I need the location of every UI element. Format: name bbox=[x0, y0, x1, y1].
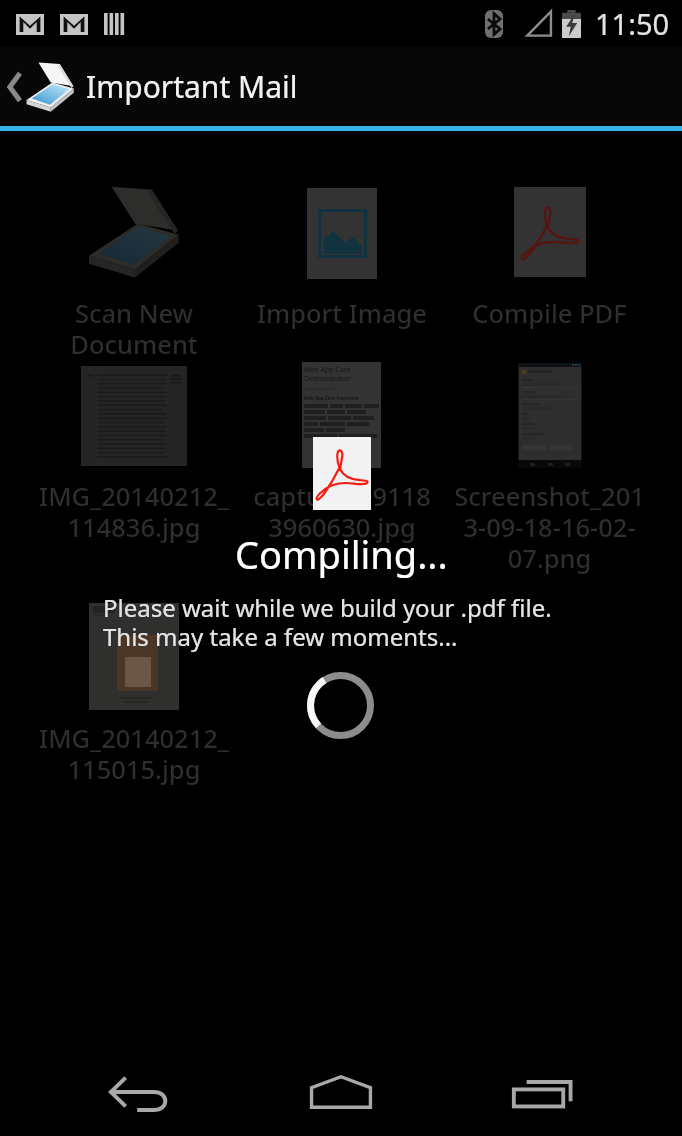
staticText: Web App Core Functions bbox=[304, 395, 359, 401]
button[interactable]: IMG_20140212_ 114836.jpg bbox=[30, 366, 237, 545]
button[interactable]: Scan New Document bbox=[30, 186, 237, 362]
staticText: IMG_20140212_ 115015.jpg bbox=[39, 721, 229, 787]
button[interactable]: Compile PDF bbox=[446, 187, 653, 331]
button[interactable]: Web App Core Demonstrator bbox=[238, 362, 445, 545]
button[interactable]: Back bbox=[81, 1048, 201, 1136]
staticText: Compile PDF bbox=[472, 296, 627, 331]
staticText: capture_19118 3960630.jpg bbox=[253, 479, 431, 545]
button[interactable]: Navigate up bbox=[0, 47, 76, 126]
button[interactable]: Recent apps bbox=[482, 1048, 602, 1136]
staticText: Scan New Document bbox=[70, 296, 198, 362]
button[interactable]: Home bbox=[281, 1048, 401, 1136]
staticText: Compiling... bbox=[235, 528, 448, 580]
button[interactable]: Import Image bbox=[238, 188, 445, 331]
staticText: 11:50 bbox=[595, 4, 670, 43]
staticText: Import Image bbox=[257, 296, 427, 331]
staticText: Please wait while we build your .pdf fil… bbox=[103, 591, 552, 653]
staticText: Screenshot_201 3-09-18-16-02- 07.png bbox=[454, 479, 645, 576]
staticText: Important Mail bbox=[86, 66, 298, 107]
staticText: Demonstrator v1.2 bbox=[304, 386, 335, 391]
button[interactable]: Screenshot_201 3-09-18-16-02- 07.png bbox=[446, 363, 653, 576]
staticText: Web App Core Demonstrator bbox=[304, 365, 351, 383]
staticText: IMG_20140212_ 114836.jpg bbox=[39, 479, 229, 545]
button[interactable]: IMG_20140212_ 115015.jpg bbox=[30, 603, 237, 787]
